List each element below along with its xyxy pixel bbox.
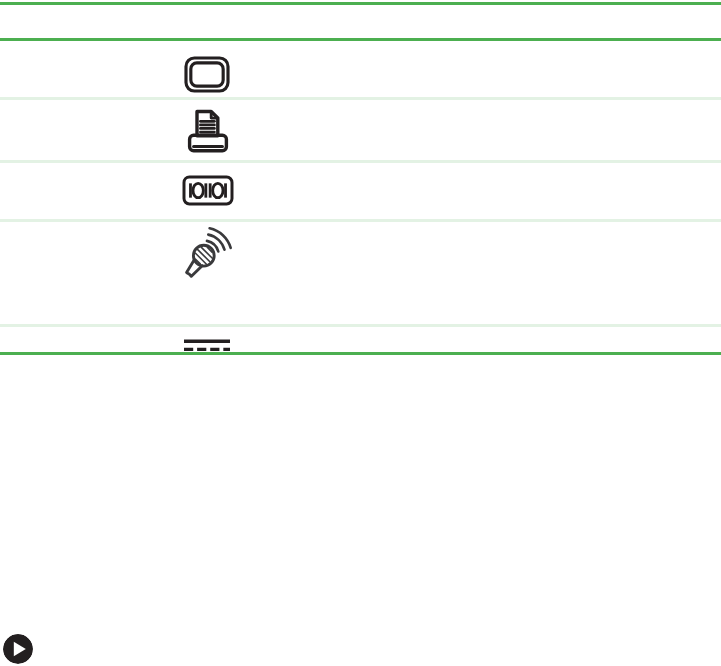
button[interactable]: Microphone [0,222,721,324]
button[interactable]: Display [0,41,721,97]
button[interactable]: Media [0,163,721,219]
button[interactable]: Line style [0,327,721,352]
button[interactable]: Play [3,634,33,664]
button[interactable]: Print [0,100,721,160]
